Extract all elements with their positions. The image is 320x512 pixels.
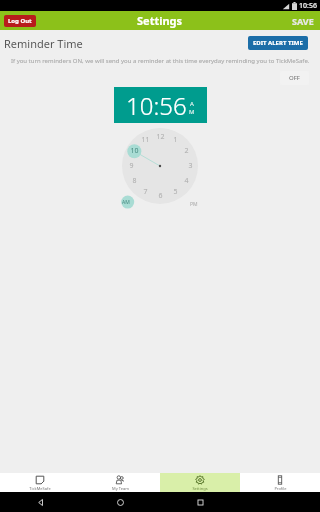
staticText: M: [189, 108, 195, 116]
staticText: 7: [143, 187, 148, 197]
staticText: 10: [130, 146, 139, 156]
button[interactable]: TickMeSafe: [0, 473, 80, 492]
staticText: If you turn reminders ON, we will send y…: [11, 57, 310, 65]
staticText: 12: [156, 132, 165, 142]
staticText: OFF: [289, 74, 300, 82]
staticText: Reminder Time: [4, 36, 83, 51]
button[interactable]: AM: [118, 196, 134, 208]
staticText: 6: [158, 191, 163, 201]
button[interactable]: 10: [127, 146, 141, 156]
button[interactable]: 9: [124, 161, 138, 171]
staticText: 1: [173, 135, 178, 145]
staticText: EDIT ALERT TIME: [253, 39, 303, 47]
staticText: Settings: [137, 13, 183, 28]
button[interactable]: My Team: [80, 473, 160, 492]
button[interactable]: SAVE: [286, 12, 320, 30]
button[interactable]: Recents: [160, 492, 240, 512]
staticText: TickMeSafe: [29, 486, 51, 491]
staticText: 10:56: [299, 1, 317, 11]
button[interactable]: 4: [179, 176, 193, 186]
button[interactable]: Log Out: [4, 15, 36, 27]
button[interactable]: 8: [127, 176, 141, 186]
button[interactable]: 7: [138, 187, 152, 197]
button[interactable]: 6: [153, 191, 167, 201]
button[interactable]: Settings: [160, 473, 240, 492]
button[interactable]: 11: [138, 135, 152, 145]
staticText: Profile: [274, 486, 287, 491]
button[interactable]: OFF: [280, 71, 309, 85]
staticText: 2: [184, 146, 189, 156]
staticText: 10:56: [126, 89, 187, 122]
staticText: 8: [132, 176, 137, 186]
staticText: PM: [190, 201, 198, 208]
staticText: 4: [184, 176, 189, 186]
staticText: 11: [141, 135, 150, 145]
button[interactable]: Home: [80, 492, 160, 512]
button[interactable]: 3: [183, 161, 197, 171]
staticText: AM: [122, 199, 130, 206]
button[interactable]: EDIT ALERT TIME: [248, 36, 308, 50]
button[interactable]: 2: [179, 146, 193, 156]
button[interactable]: 1: [168, 135, 182, 145]
button[interactable]: 10:56: [114, 87, 207, 123]
staticText: Settings: [192, 486, 208, 491]
button[interactable]: Profile: [240, 473, 320, 492]
staticText: A: [190, 100, 194, 108]
staticText: 3: [188, 161, 193, 171]
button[interactable]: PM: [186, 198, 202, 210]
staticText: Log Out: [8, 17, 32, 25]
staticText: My Team: [112, 486, 129, 491]
staticText: 5: [173, 187, 178, 197]
staticText: 9: [129, 161, 134, 171]
button[interactable]: 5: [168, 187, 182, 197]
button[interactable]: 12: [153, 132, 167, 142]
button[interactable]: Back: [0, 492, 80, 512]
staticText: SAVE: [292, 15, 314, 27]
